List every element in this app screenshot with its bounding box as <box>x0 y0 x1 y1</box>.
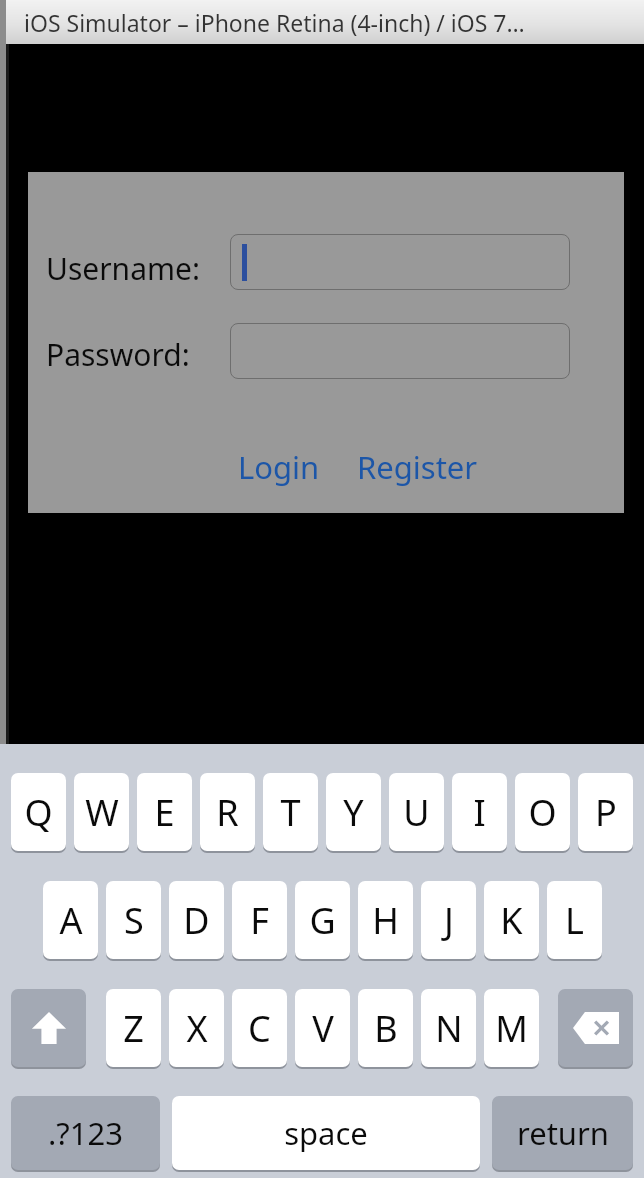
staticText: J <box>444 896 454 945</box>
staticText: Y <box>343 788 364 837</box>
staticText: L <box>565 896 584 945</box>
staticText: S <box>124 896 144 945</box>
button[interactable]: Register <box>353 444 482 490</box>
staticText: iOS Simulator – iPhone Retina (4-inch) /… <box>24 7 525 38</box>
staticText: C <box>248 1004 271 1053</box>
button[interactable]: Backspace <box>558 989 633 1067</box>
button[interactable]: Q <box>11 773 66 851</box>
button[interactable] <box>230 323 570 379</box>
button[interactable]: T <box>263 773 318 851</box>
staticText: return <box>517 1112 609 1154</box>
staticText: U <box>403 788 430 837</box>
staticText: Login <box>238 446 320 488</box>
staticText: A <box>59 896 83 945</box>
staticText: F <box>250 896 269 945</box>
staticText: D <box>183 896 210 945</box>
staticText: N <box>435 1004 463 1053</box>
staticText: .?123 <box>48 1112 123 1154</box>
staticText: I <box>473 788 486 837</box>
button[interactable]: H <box>358 881 413 959</box>
button[interactable]: L <box>547 881 602 959</box>
staticText: M <box>495 1004 528 1053</box>
staticText: O <box>528 788 557 837</box>
button[interactable]: Login <box>234 444 324 490</box>
staticText: W <box>85 788 119 837</box>
button[interactable]: R <box>200 773 255 851</box>
button[interactable]: O <box>515 773 570 851</box>
button[interactable]: C <box>232 989 287 1067</box>
button[interactable]: U <box>389 773 444 851</box>
button[interactable]: W <box>74 773 129 851</box>
button[interactable]: Shift <box>11 989 86 1067</box>
staticText: V <box>312 1004 334 1053</box>
staticText: B <box>374 1004 398 1053</box>
button[interactable]: B <box>358 989 413 1067</box>
staticText: R <box>216 788 239 837</box>
button[interactable]: M <box>484 989 539 1067</box>
staticText: space <box>284 1112 368 1154</box>
staticText: H <box>372 896 399 945</box>
button[interactable]: E <box>137 773 192 851</box>
staticText: Username: <box>46 248 200 289</box>
button[interactable]: Z <box>106 989 161 1067</box>
staticText: K <box>500 896 523 945</box>
button[interactable]: V <box>295 989 350 1067</box>
button[interactable]: I <box>452 773 507 851</box>
button[interactable]: return <box>492 1096 633 1170</box>
staticText: P <box>595 788 617 837</box>
staticText: T <box>280 788 301 837</box>
button[interactable]: N <box>421 989 476 1067</box>
button[interactable] <box>230 234 570 290</box>
staticText: Q <box>24 788 53 837</box>
button[interactable]: S <box>106 881 161 959</box>
button[interactable]: P <box>578 773 633 851</box>
button[interactable]: .?123 <box>11 1096 160 1170</box>
button[interactable]: X <box>169 989 224 1067</box>
staticText: G <box>309 896 336 945</box>
staticText: X <box>186 1004 208 1053</box>
button[interactable]: F <box>232 881 287 959</box>
button[interactable]: J <box>421 881 476 959</box>
button[interactable]: A <box>43 881 98 959</box>
button[interactable]: G <box>295 881 350 959</box>
button[interactable]: Y <box>326 773 381 851</box>
staticText: Password: <box>46 334 190 375</box>
button[interactable]: D <box>169 881 224 959</box>
button[interactable]: space <box>172 1096 480 1170</box>
staticText: Register <box>357 446 478 488</box>
staticText: E <box>154 788 175 837</box>
button[interactable]: K <box>484 881 539 959</box>
staticText: Z <box>123 1004 144 1053</box>
